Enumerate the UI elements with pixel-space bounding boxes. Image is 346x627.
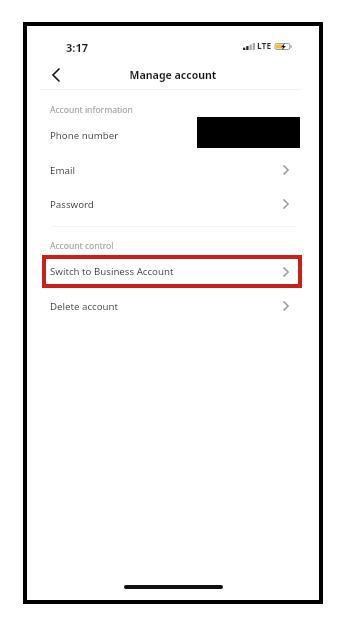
staticText: Account control	[50, 240, 114, 252]
staticText: Phone number	[50, 129, 119, 142]
button[interactable]: Phone number	[42, 124, 302, 146]
button[interactable]: Delete account	[42, 295, 302, 317]
button[interactable]: Password	[42, 193, 302, 215]
staticText: Switch to Business Account	[50, 265, 174, 278]
staticText: Delete account	[50, 300, 119, 313]
button[interactable]: Switch to Business Account	[46, 259, 298, 284]
staticText: Password	[50, 198, 94, 211]
staticText: Account information	[50, 104, 133, 116]
button[interactable]: Back	[42, 61, 70, 89]
staticText: Email	[50, 164, 75, 177]
staticText: 3:17	[66, 40, 88, 55]
staticText: LTE	[257, 40, 272, 52]
staticText: Manage account	[27, 68, 319, 82]
button[interactable]: Email	[42, 159, 302, 181]
